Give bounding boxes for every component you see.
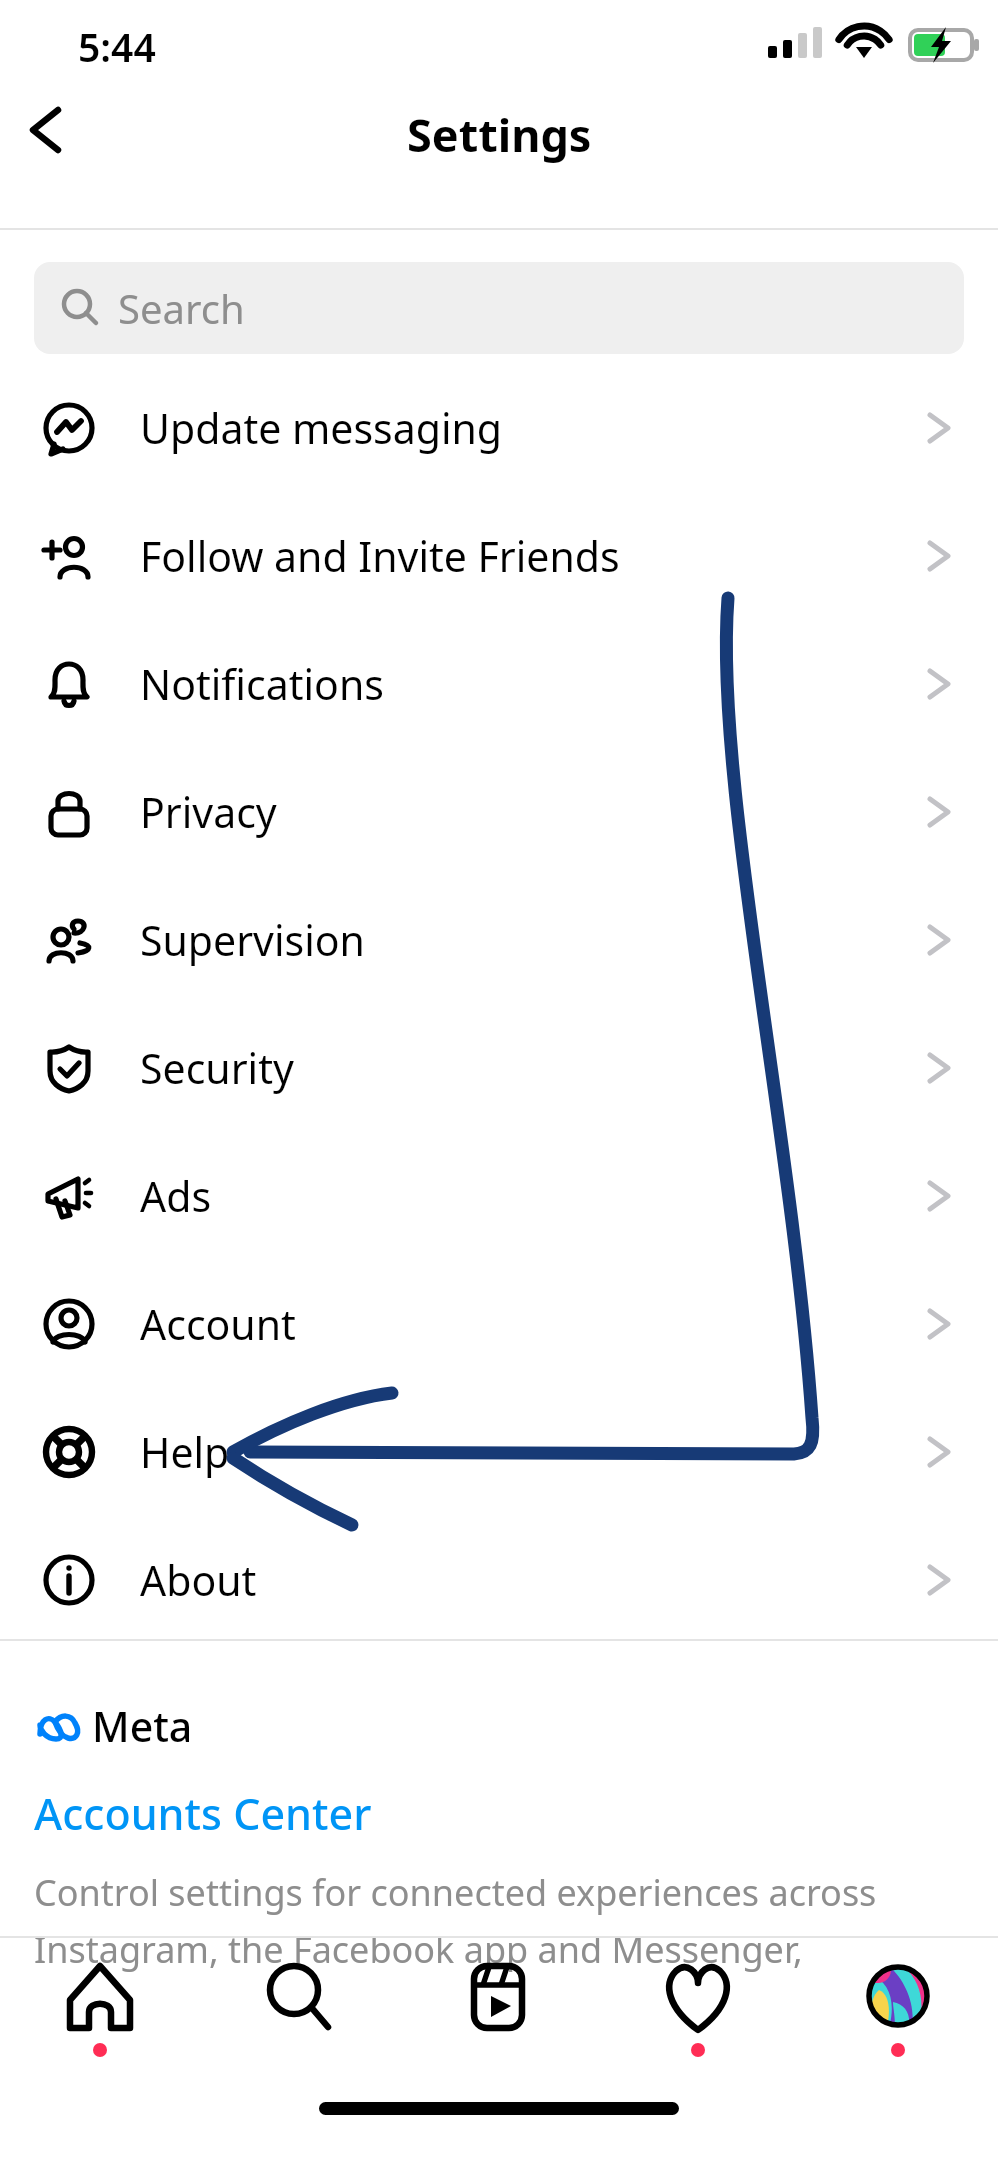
staticText: Help [140,1424,916,1480]
button[interactable]: Search [199,1938,398,2090]
button[interactable]: Accounts Center [34,1780,372,1847]
button[interactable]: Home [0,1938,199,2090]
staticText: About [140,1552,916,1608]
button[interactable]: Update messaging [0,366,998,490]
button[interactable]: Follow and Invite Friends [0,494,998,618]
staticText: 5:44 [78,20,156,73]
button[interactable]: Security [0,1006,998,1130]
staticText: Ads [140,1168,916,1224]
button[interactable]: Back [8,88,92,172]
staticText: Follow and Invite Friends [140,528,916,584]
button[interactable]: Privacy [0,750,998,874]
staticText: Settings [407,104,592,165]
staticText: Meta [92,1698,193,1754]
staticText: Account [140,1296,916,1352]
button[interactable]: Activity [598,1938,798,2090]
staticText: Supervision [140,912,916,968]
staticText: Search [118,281,245,335]
button[interactable]: Help [0,1390,998,1514]
staticText: Instagram, the Facebook app and Messenge… [34,1925,914,1974]
button[interactable]: Notifications [0,622,998,746]
button[interactable]: Profile [798,1938,998,2090]
button[interactable]: Supervision [0,878,998,1002]
button[interactable]: Reels [398,1938,598,2090]
button[interactable]: Account [0,1262,998,1386]
staticText: Update messaging [140,400,916,456]
button[interactable]: Search [34,262,964,354]
staticText: Security [140,1040,916,1096]
staticText: Privacy [140,784,916,840]
button[interactable]: Ads [0,1134,998,1258]
staticText: Control settings for connected experienc… [34,1868,877,1917]
staticText: Accounts Center [34,1784,372,1843]
button[interactable]: About [0,1518,998,1642]
staticText: Notifications [140,656,916,712]
